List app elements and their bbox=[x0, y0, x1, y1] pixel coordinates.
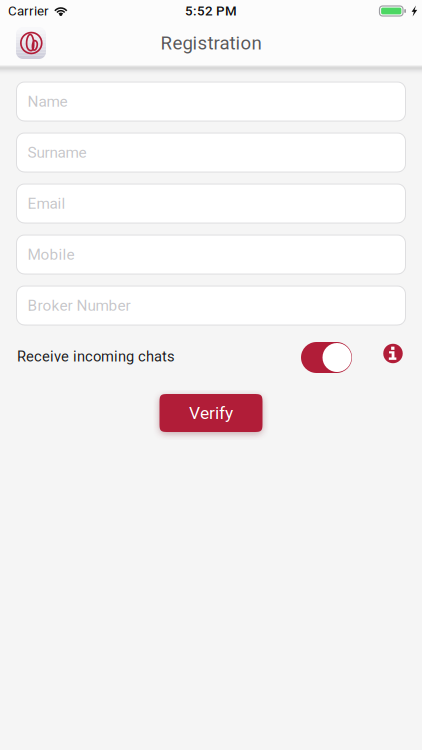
staticText: Registration bbox=[160, 32, 261, 54]
button[interactable]: Information bbox=[381, 341, 405, 365]
staticText: Surname bbox=[27, 143, 86, 161]
staticText: Email bbox=[27, 194, 65, 212]
staticText: Name bbox=[27, 92, 67, 110]
button[interactable]: Receive incoming chats bbox=[301, 342, 352, 373]
staticText: Receive incoming chats bbox=[17, 348, 175, 365]
staticText: 5:52 PM bbox=[185, 3, 237, 19]
button[interactable]: Verify bbox=[159, 394, 262, 432]
button[interactable]: Open menu bbox=[0, 22, 56, 64]
staticText: Broker Number bbox=[27, 296, 130, 314]
button[interactable]: Broker Number bbox=[16, 286, 405, 325]
staticText: Carrier bbox=[8, 3, 49, 19]
button[interactable]: Email bbox=[16, 184, 405, 223]
button[interactable]: Name bbox=[16, 82, 405, 121]
button[interactable]: Mobile bbox=[16, 235, 405, 274]
staticText: Mobile bbox=[27, 245, 74, 263]
staticText: Verify bbox=[189, 403, 233, 423]
button[interactable]: Surname bbox=[16, 133, 405, 172]
